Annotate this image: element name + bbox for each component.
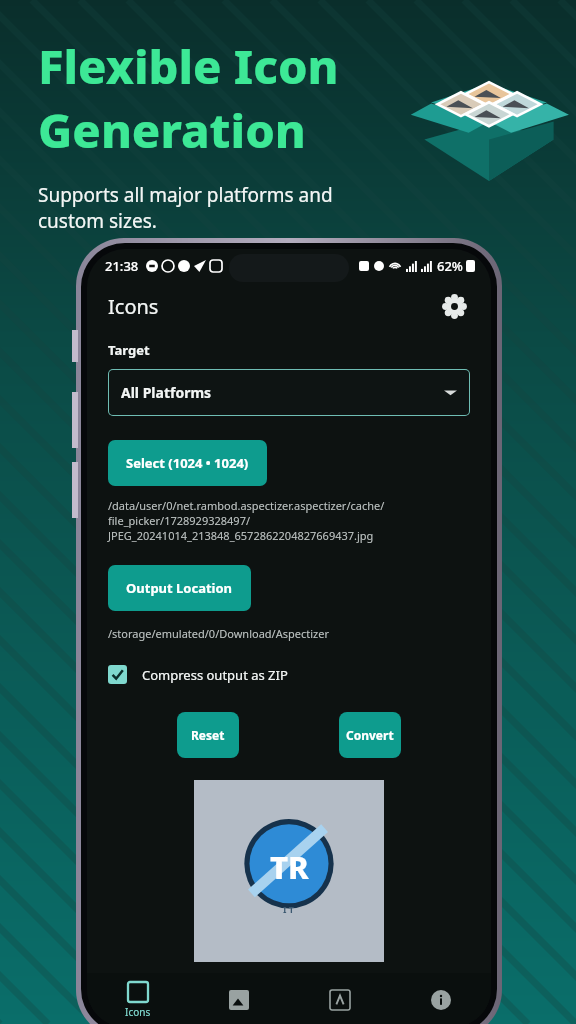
staticText: Convert bbox=[346, 727, 394, 743]
button[interactable]: Convert bbox=[339, 712, 401, 758]
staticText: 62% bbox=[437, 257, 463, 275]
button[interactable]: Compress output as ZIP bbox=[108, 665, 288, 684]
button[interactable]: Output Location bbox=[108, 565, 251, 611]
button[interactable]: Text bbox=[289, 973, 390, 1024]
button[interactable]: Settings bbox=[438, 290, 470, 322]
staticText: Generation bbox=[38, 98, 306, 162]
staticText: Compress output as ZIP bbox=[142, 666, 288, 684]
staticText: /storage/emulated/0/Download/Aspectizer bbox=[108, 626, 329, 641]
button[interactable]: Gallery bbox=[188, 973, 289, 1024]
staticText: Flexible Icon bbox=[38, 34, 339, 98]
staticText: file_picker/1728929328497/ bbox=[108, 513, 251, 528]
button[interactable]: Select (1024 • 1024) bbox=[108, 440, 267, 486]
button[interactable]: Icons bbox=[87, 973, 188, 1024]
staticText: Icons bbox=[125, 1005, 151, 1019]
button[interactable]: Reset bbox=[177, 712, 239, 758]
staticText: TR bbox=[270, 846, 309, 888]
staticText: I T bbox=[283, 903, 295, 915]
staticText: JPEG_20241014_213848_6572862204827669437… bbox=[108, 528, 374, 543]
staticText: All Platforms bbox=[121, 383, 212, 402]
button[interactable]: Info bbox=[390, 973, 491, 1024]
staticText: /data/user/0/net.rambod.aspectizer.aspec… bbox=[108, 498, 385, 513]
staticText: Icons bbox=[108, 293, 159, 320]
button[interactable]: All Platforms bbox=[108, 369, 470, 416]
staticText: 21:38 bbox=[105, 257, 139, 275]
staticText: Select (1024 • 1024) bbox=[126, 454, 249, 472]
staticText: custom sizes. bbox=[38, 208, 157, 234]
staticText: Supports all major platforms and bbox=[38, 182, 333, 208]
staticText: Reset bbox=[191, 727, 225, 743]
staticText: Target bbox=[108, 341, 150, 359]
staticText: Output Location bbox=[126, 579, 233, 597]
